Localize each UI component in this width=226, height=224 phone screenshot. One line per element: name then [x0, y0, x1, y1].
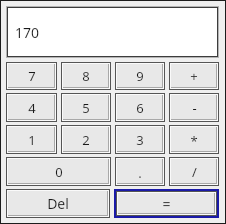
- button[interactable]: /: [169, 157, 219, 186]
- staticText: +: [190, 67, 198, 85]
- button[interactable]: 4: [6, 93, 57, 122]
- button[interactable]: 7: [6, 62, 57, 90]
- staticText: 6: [136, 99, 144, 117]
- staticText: =: [162, 194, 171, 213]
- staticText: *: [190, 132, 198, 150]
- button[interactable]: *: [169, 125, 219, 154]
- staticText: 5: [82, 99, 90, 117]
- button[interactable]: 5: [61, 93, 111, 122]
- staticText: 170: [15, 23, 40, 42]
- button[interactable]: .: [115, 157, 165, 186]
- button[interactable]: Del: [6, 189, 110, 218]
- staticText: 2: [82, 131, 90, 149]
- staticText: 9: [136, 67, 144, 85]
- button[interactable]: 1: [6, 125, 57, 154]
- button[interactable]: 8: [61, 62, 111, 90]
- button[interactable]: -: [169, 93, 219, 122]
- staticText: Del: [47, 194, 69, 213]
- button[interactable]: 3: [115, 125, 165, 154]
- button[interactable]: 6: [115, 93, 165, 122]
- button[interactable]: 2: [61, 125, 111, 154]
- staticText: 4: [28, 99, 36, 117]
- button[interactable]: +: [169, 62, 219, 90]
- staticText: 8: [82, 67, 90, 85]
- staticText: 7: [28, 67, 36, 85]
- staticText: -: [192, 99, 197, 117]
- staticText: .: [138, 164, 142, 182]
- button[interactable]: =: [116, 191, 217, 216]
- staticText: /: [192, 163, 197, 181]
- button[interactable]: 170: [8, 8, 217, 56]
- staticText: 1: [28, 131, 36, 149]
- button[interactable]: 0: [6, 157, 111, 186]
- staticText: 3: [136, 131, 144, 149]
- button[interactable]: 9: [115, 62, 165, 90]
- staticText: 0: [55, 163, 63, 181]
